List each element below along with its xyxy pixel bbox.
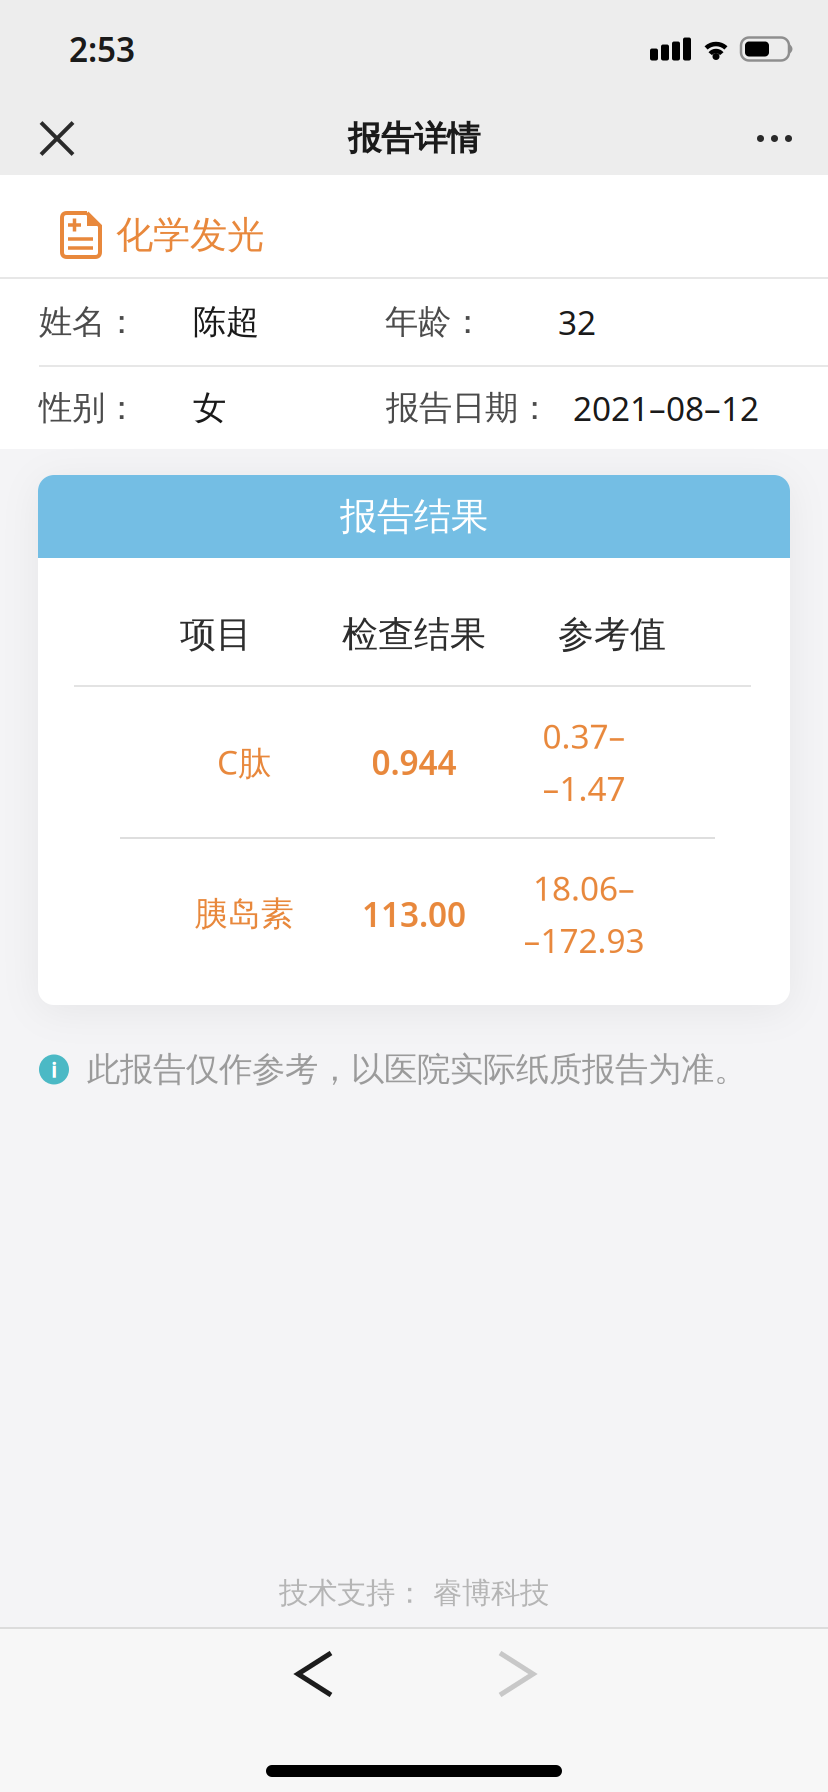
staticText: 此报告仅作参考，以医院实际纸质报告为准。 [87, 1049, 747, 1090]
button[interactable]: More [757, 105, 828, 172]
staticText: C肽 [217, 740, 271, 784]
staticText: 报告详情 [348, 118, 480, 159]
staticText: 技术支持： 睿博科技 [279, 1575, 549, 1611]
staticText: 性别： [39, 387, 138, 428]
staticText: 项目 [180, 612, 252, 657]
staticText: 2:53 [69, 27, 135, 71]
button[interactable]: Back [292, 1651, 336, 1697]
staticText: 年龄： [385, 301, 484, 342]
staticText: 113.00 [362, 892, 466, 936]
staticText: –1.47 [542, 766, 625, 810]
staticText: 报告日期： [386, 387, 551, 428]
staticText: 0.944 [371, 740, 456, 784]
staticText: 检查结果 [342, 612, 486, 657]
staticText: 女 [193, 387, 226, 428]
staticText: –172.93 [523, 918, 644, 962]
button[interactable]: Forward [495, 1651, 539, 1697]
staticText: 化学发光 [116, 212, 264, 258]
staticText: 32 [558, 300, 596, 344]
staticText: 姓名： [39, 301, 138, 342]
staticText: 陈超 [193, 301, 259, 342]
staticText: 参考值 [558, 612, 666, 657]
staticText: 报告结果 [340, 494, 488, 539]
staticText: 0.37– [542, 714, 625, 758]
staticText: i [51, 1055, 57, 1084]
staticText: 胰岛素 [194, 893, 293, 934]
button[interactable]: Close [0, 96, 75, 180]
staticText: 2021–08–12 [573, 386, 759, 430]
staticText: 18.06– [533, 866, 635, 910]
